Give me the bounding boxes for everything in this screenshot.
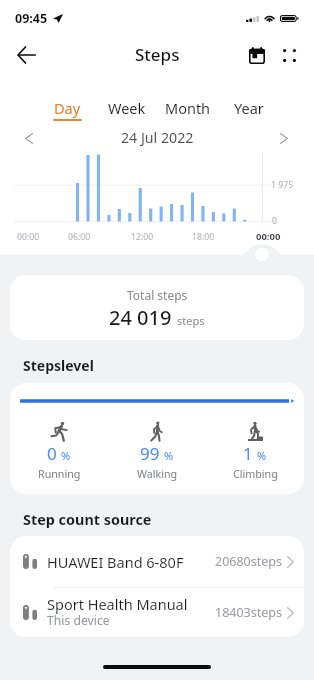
button[interactable]: More options [276, 42, 302, 68]
staticText: 99 [140, 442, 160, 465]
button[interactable]: HUAWEI Band 6-80F [10, 536, 304, 587]
button[interactable]: Next day [273, 127, 295, 149]
staticText: 06:00 [68, 231, 91, 243]
staticText: Running [38, 467, 81, 482]
staticText: 1 975 [271, 179, 294, 191]
button[interactable]: Month [157, 98, 218, 128]
staticText: % [61, 448, 71, 463]
staticText: 0 [47, 442, 57, 465]
staticText: % [164, 448, 174, 463]
staticText: Stepslevel [23, 356, 94, 375]
staticText: Year [234, 98, 264, 118]
staticText: % [257, 448, 267, 463]
staticText: 24 Jul 2022 [121, 128, 194, 147]
staticText: 12:00 [131, 231, 154, 243]
staticText: 24 019 [109, 304, 172, 331]
button[interactable]: 0 [10, 421, 108, 482]
button[interactable]: Previous day [18, 127, 40, 149]
staticText: 1 [243, 442, 253, 465]
staticText: Total steps [127, 287, 188, 303]
button[interactable]: 99 [108, 421, 206, 482]
button[interactable]: 1 [206, 421, 304, 482]
button[interactable]: Day [37, 98, 97, 128]
staticText: 09:45 [15, 10, 48, 27]
staticText: 0 [272, 215, 277, 227]
button[interactable]: Week [97, 98, 157, 128]
staticText: steps [177, 313, 205, 328]
staticText: Steps [135, 43, 180, 66]
button[interactable]: Sport Health Manual [10, 588, 304, 637]
staticText: 20680steps [215, 553, 282, 570]
staticText: Week [108, 98, 146, 118]
staticText: 18403steps [215, 604, 282, 621]
staticText: Sport Health Manual [47, 594, 188, 614]
staticText: HUAWEI Band 6-80F [47, 552, 184, 572]
staticText: 18:00 [192, 231, 215, 243]
staticText: 00:00 [256, 230, 281, 243]
staticText: Climbing [233, 467, 278, 482]
staticText: Walking [137, 467, 178, 482]
staticText: 00:00 [17, 231, 40, 243]
staticText: Step count source [23, 510, 152, 530]
staticText: This device [47, 612, 110, 629]
button[interactable]: Calendar [243, 41, 271, 69]
staticText: Day [54, 98, 81, 118]
button[interactable]: Back [11, 40, 41, 70]
staticText: Month [165, 98, 211, 118]
button[interactable]: Year [218, 98, 279, 128]
